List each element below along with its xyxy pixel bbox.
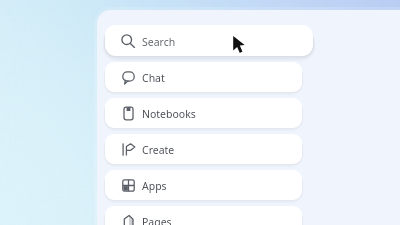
button[interactable]: Search — [105, 25, 313, 56]
button[interactable]: Apps — [105, 170, 302, 200]
staticText: Create — [142, 143, 175, 157]
button[interactable]: Notebooks — [105, 98, 302, 128]
button[interactable]: Create — [105, 134, 302, 164]
staticText: Search — [142, 35, 176, 49]
button[interactable]: Chat — [105, 62, 302, 92]
button[interactable]: Pages — [105, 206, 302, 225]
staticText: Pages — [142, 215, 172, 225]
staticText: Notebooks — [142, 107, 196, 121]
staticText: Chat — [142, 71, 165, 85]
other: Pointer — [231, 35, 253, 57]
staticText: Apps — [142, 179, 167, 193]
